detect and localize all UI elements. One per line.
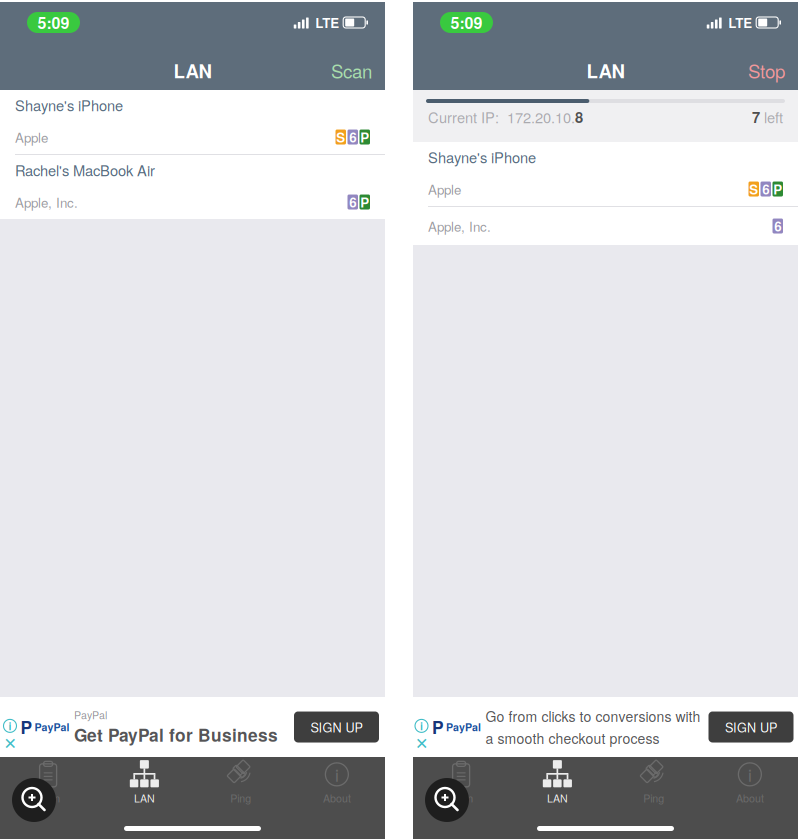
staticText: PayPal bbox=[34, 719, 69, 735]
staticText: Go from clicks to conversions with bbox=[485, 706, 700, 726]
staticText: Ping bbox=[643, 790, 664, 806]
button[interactable]: SIGN UP bbox=[294, 711, 379, 742]
staticText: P bbox=[20, 715, 32, 739]
staticText: 6 bbox=[762, 179, 769, 199]
staticText: 6 bbox=[774, 216, 781, 236]
staticText: Current IP: 172.20.10. bbox=[428, 106, 575, 127]
staticText: 8 bbox=[575, 106, 583, 127]
staticText: Shayne's iPhone bbox=[15, 94, 123, 115]
staticText: S bbox=[336, 127, 345, 147]
button[interactable]: Ping bbox=[605, 760, 702, 806]
staticText: i bbox=[420, 718, 423, 733]
staticText: 6 bbox=[349, 192, 356, 212]
staticText: ✕ bbox=[3, 734, 16, 753]
staticText: Apple, Inc. bbox=[15, 192, 78, 212]
staticText: S bbox=[749, 179, 758, 199]
staticText: Rachel's MacBook Air bbox=[15, 159, 155, 180]
staticText: Apple bbox=[15, 127, 48, 147]
staticText: ✕ bbox=[415, 734, 428, 753]
button[interactable]: LAN bbox=[509, 760, 605, 806]
staticText: LTE bbox=[315, 13, 339, 32]
button[interactable]: Scan bbox=[413, 760, 509, 806]
staticText: Scan bbox=[36, 790, 60, 806]
staticText: 7 bbox=[752, 106, 760, 127]
staticText: LAN bbox=[173, 57, 211, 84]
staticText: Get PayPal for Business bbox=[74, 722, 278, 747]
staticText: 6 bbox=[349, 127, 356, 147]
button[interactable]: i bbox=[702, 760, 798, 806]
staticText: i bbox=[748, 762, 752, 787]
staticText: LAN bbox=[547, 790, 568, 806]
staticText: SIGN UP bbox=[725, 718, 777, 736]
staticText: SIGN UP bbox=[310, 718, 362, 736]
staticText: Apple, Inc. bbox=[428, 216, 491, 236]
button[interactable]: SIGN UP bbox=[708, 711, 793, 742]
staticText: 5:09 bbox=[450, 11, 482, 34]
staticText: Stop bbox=[748, 57, 785, 84]
staticText: PayPal bbox=[74, 707, 107, 722]
staticText: PayPal bbox=[446, 719, 481, 735]
staticText: About bbox=[736, 790, 764, 806]
staticText: Scan bbox=[331, 57, 372, 84]
staticText: About bbox=[323, 790, 351, 806]
staticText: LAN bbox=[586, 57, 624, 84]
button[interactable]: Ping bbox=[192, 760, 289, 806]
staticText: left bbox=[760, 106, 783, 127]
staticText: Apple bbox=[428, 179, 461, 199]
staticText: LTE bbox=[728, 13, 752, 32]
staticText: Ping bbox=[230, 790, 251, 806]
staticText: i bbox=[335, 762, 339, 787]
staticText: a smooth checkout process bbox=[485, 728, 659, 748]
staticText: LAN bbox=[134, 790, 155, 806]
staticText: P bbox=[360, 192, 369, 212]
staticText: P bbox=[773, 179, 782, 199]
staticText: i bbox=[8, 718, 11, 733]
staticText: Shayne's iPhone bbox=[428, 146, 536, 167]
button[interactable]: Scan bbox=[0, 760, 96, 806]
staticText: P bbox=[360, 127, 369, 147]
staticText: P bbox=[432, 715, 444, 739]
button[interactable]: LAN bbox=[96, 760, 192, 806]
staticText: Scan bbox=[449, 790, 473, 806]
button[interactable]: Stop bbox=[737, 49, 796, 92]
button[interactable]: Scan bbox=[320, 49, 383, 92]
staticText: 5:09 bbox=[37, 11, 69, 34]
button[interactable]: i bbox=[289, 760, 385, 806]
